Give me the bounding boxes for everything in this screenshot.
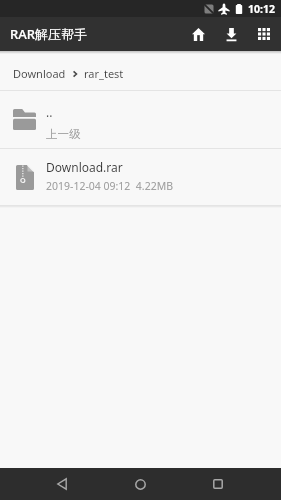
button[interactable] xyxy=(216,19,246,49)
button[interactable] xyxy=(249,19,279,49)
button[interactable] xyxy=(179,468,257,500)
button[interactable] xyxy=(101,468,179,500)
staticText: 10:12 xyxy=(248,2,275,16)
button[interactable]: Download.rar xyxy=(0,149,281,205)
staticText: .. xyxy=(46,104,53,120)
button[interactable] xyxy=(23,468,101,500)
button[interactable] xyxy=(183,19,213,49)
staticText: rar_test xyxy=(84,66,124,81)
staticText: 2019-12-04 09:12 4.22MB xyxy=(46,179,174,193)
staticText: RAR解压帮手 xyxy=(10,25,87,43)
button[interactable]: .. xyxy=(0,91,281,148)
button[interactable]: Download xyxy=(0,57,281,90)
staticText: Download xyxy=(13,66,66,81)
staticText: Download.rar xyxy=(46,159,123,175)
staticText: 上一级 xyxy=(46,127,81,141)
